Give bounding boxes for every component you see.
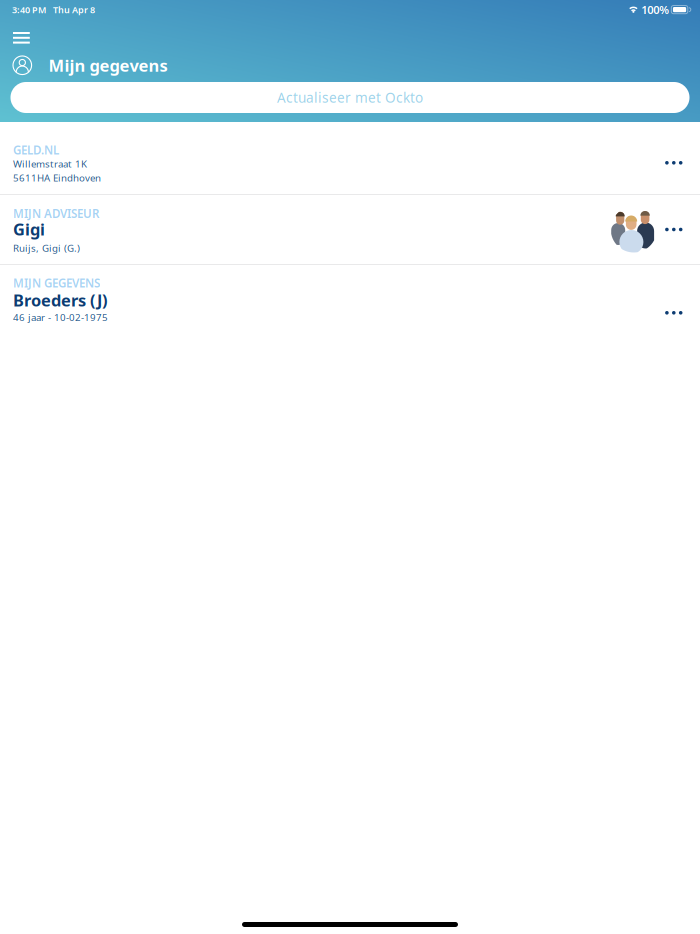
staticText: Actualiseer met Ockto — [277, 88, 423, 107]
staticText: MIJN GEGEVENS — [13, 275, 100, 291]
button[interactable]: MIJN ADVISEUR — [0, 195, 700, 264]
staticText: Broeders (J) — [13, 289, 108, 311]
staticText: Ruijs, Gigi (G.) — [13, 241, 80, 255]
staticText: 3:40 PM — [12, 3, 46, 16]
button[interactable]: GELD.NL — [0, 122, 700, 194]
staticText: Thu Apr 8 — [53, 3, 95, 16]
staticText: Willemstraat 1K — [13, 157, 87, 170]
staticText: MIJN ADVISEUR — [13, 206, 99, 221]
button[interactable]: Menu — [0, 23, 43, 53]
staticText: 46 jaar - 10-02-1975 — [13, 311, 108, 324]
staticText: Mijn gegevens — [49, 54, 168, 76]
button[interactable]: MIJN GEGEVENS — [0, 265, 700, 334]
staticText: 5611HA Eindhoven — [13, 171, 101, 184]
staticText: GELD.NL — [13, 142, 59, 158]
staticText: Gigi — [13, 218, 45, 240]
button[interactable]: Actualiseer met Ockto — [10, 82, 689, 113]
staticText: 100% — [641, 2, 669, 17]
